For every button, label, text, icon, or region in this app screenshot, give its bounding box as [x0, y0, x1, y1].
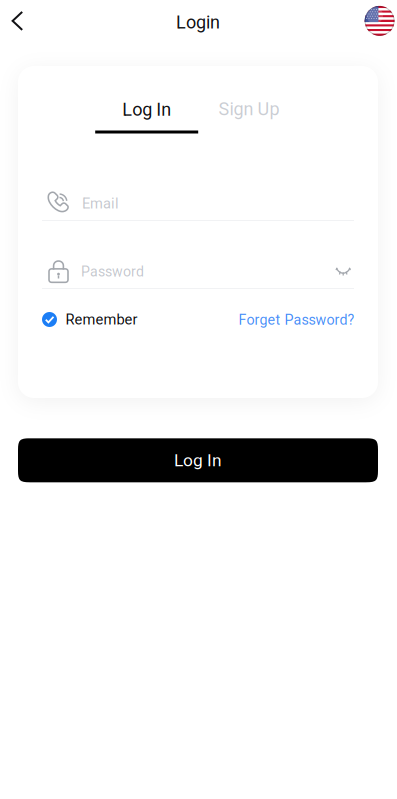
button[interactable]: Sign Up	[189, 98, 309, 133]
staticText: Sign Up	[218, 98, 279, 120]
button[interactable]: Email	[42, 188, 354, 220]
button[interactable]: Show password	[328, 259, 358, 285]
button[interactable]: Select language	[360, 1, 397, 41]
button[interactable]: Forget Password?	[238, 309, 354, 331]
button[interactable]: Back	[0, 0, 39, 43]
button[interactable]: Log In	[87, 98, 207, 133]
staticText: Log In	[174, 450, 222, 470]
button[interactable]: Password	[42, 256, 322, 288]
staticText: Password	[81, 263, 144, 280]
staticText: Remember	[65, 311, 137, 328]
staticText: Log In	[122, 99, 171, 120]
staticText: Login	[176, 12, 220, 33]
button[interactable]: Log In	[18, 438, 378, 482]
staticText: Forget Password?	[238, 311, 354, 328]
staticText: Email	[82, 195, 119, 212]
button[interactable]: Remember	[42, 308, 138, 330]
